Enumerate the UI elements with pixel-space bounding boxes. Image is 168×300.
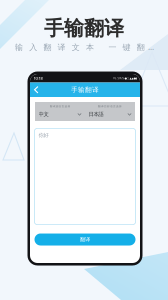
- staticText: 你好: [38, 132, 48, 139]
- staticText: 手输翻译: [44, 16, 124, 41]
- staticText: 翻译目标语言选择: [98, 105, 122, 108]
- staticText: 输入翻译文本 一键翻译: [15, 42, 159, 51]
- staticText: 翻译: [80, 236, 90, 243]
- button[interactable]: Back: [30, 82, 43, 97]
- staticText: 76.5K/s: [112, 76, 123, 80]
- staticText: 翻译源语言选择: [49, 105, 70, 108]
- staticText: 10:18: [33, 76, 42, 81]
- staticText: ●□▲▲●▮: [123, 77, 136, 80]
- button[interactable]: 翻译目标语言选择: [85, 102, 135, 121]
- button[interactable]: 翻译源语言选择: [35, 102, 85, 121]
- staticText: 手输翻译: [71, 86, 99, 94]
- staticText: 日本語: [88, 111, 103, 118]
- button[interactable]: 翻译: [34, 233, 135, 245]
- staticText: 中文: [38, 111, 48, 118]
